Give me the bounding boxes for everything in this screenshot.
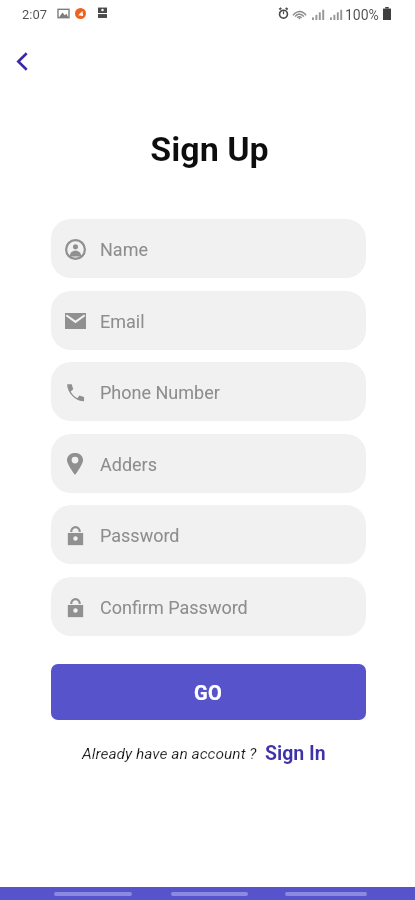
staticText: Confirm Password (100, 597, 248, 618)
button[interactable]: Password (51, 505, 366, 564)
staticText: Phone Number (100, 382, 220, 403)
button[interactable]: GO (51, 664, 366, 720)
staticText: GO (194, 681, 223, 704)
staticText: Email (100, 311, 145, 332)
button[interactable]: Phone Number (51, 362, 366, 421)
button[interactable]: Adders (51, 434, 366, 493)
button[interactable]: Navigation (54, 892, 132, 896)
staticText: Adders (100, 454, 157, 475)
staticText: 100% (345, 7, 379, 23)
button[interactable]: Navigation (171, 892, 248, 896)
staticText: 2:07 (22, 7, 48, 22)
button[interactable]: Back (2, 41, 42, 81)
button[interactable]: Email (51, 291, 366, 350)
button[interactable]: Name (51, 219, 366, 278)
staticText: Already have an account ? (82, 745, 257, 763)
staticText: Password (100, 525, 180, 546)
button[interactable]: Sign In (265, 742, 326, 765)
button[interactable]: Navigation (285, 892, 367, 896)
button[interactable]: Confirm Password (51, 577, 366, 636)
staticText: Name (100, 239, 148, 260)
staticText: Sign Up (2, 129, 415, 169)
staticText: Sign In (265, 742, 326, 765)
